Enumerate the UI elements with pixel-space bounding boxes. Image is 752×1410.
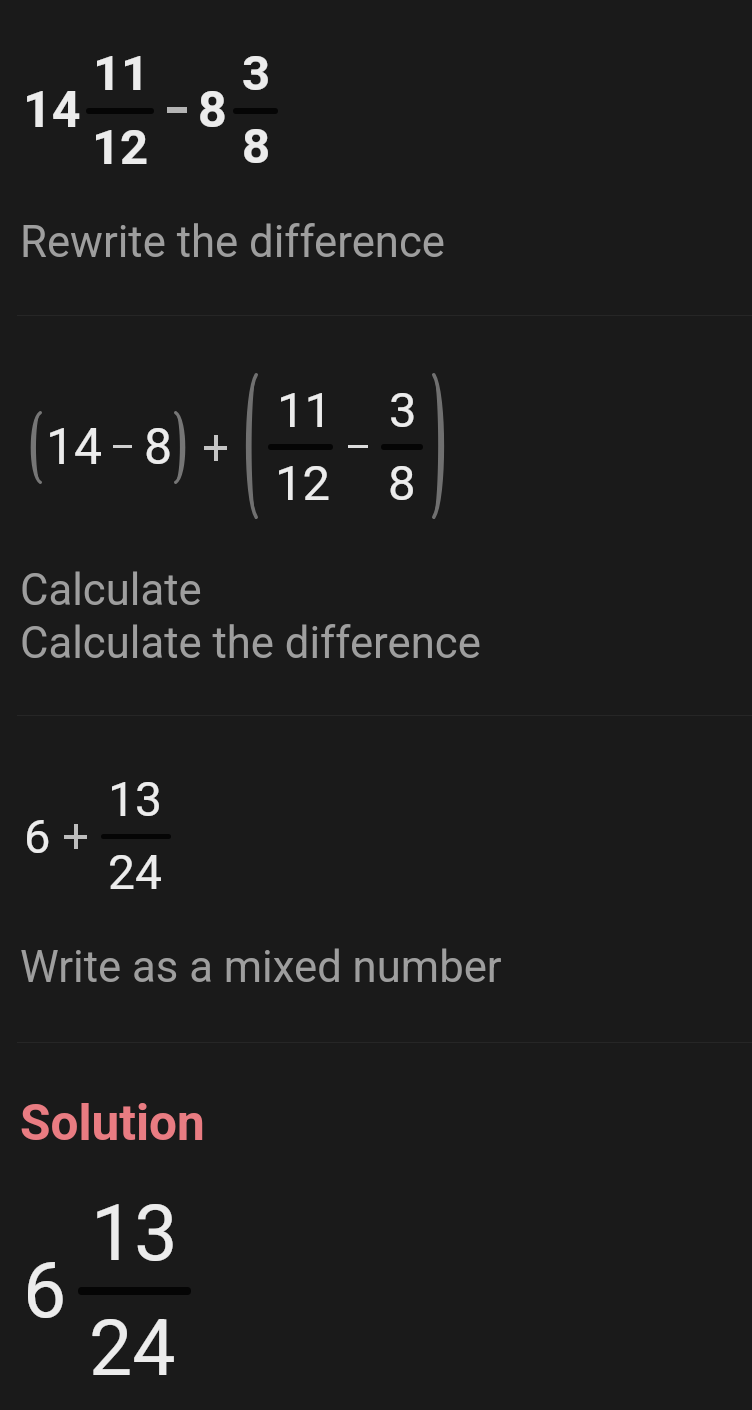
staticText: Solution [20, 1094, 205, 1152]
staticText: 12 [92, 119, 149, 176]
staticText: 14 [46, 418, 103, 477]
staticText: 13 [91, 1189, 178, 1279]
button[interactable]: Step 3: 6 plus 13 over 24 [0, 717, 752, 1042]
staticText: 8 [144, 418, 173, 477]
staticText: 14 [23, 81, 81, 140]
staticText: Calculate the difference [20, 617, 481, 668]
button[interactable]: Solution: 6 and 13 over 24 [0, 1044, 752, 1410]
staticText: 24 [89, 1304, 176, 1394]
staticText: 6 [24, 809, 51, 864]
staticText: 13 [108, 771, 162, 827]
staticText: 8 [242, 118, 271, 175]
staticText: Rewrite the difference [20, 216, 446, 267]
staticText: 11 [277, 382, 333, 439]
staticText: 11 [93, 45, 150, 102]
staticText: 3 [389, 382, 417, 439]
staticText: 3 [242, 45, 271, 102]
staticText: Calculate [20, 564, 202, 615]
staticText: 6 [23, 1246, 67, 1336]
staticText: 8 [198, 81, 227, 140]
staticText: 24 [108, 844, 162, 900]
button[interactable]: Step 1: 14 and 11 over 12 minus 8 and 3 … [0, 0, 752, 315]
staticText: Write as a mixed number [20, 941, 502, 992]
button[interactable]: Step 2: 14 minus 8, plus 11 over 12 minu… [0, 317, 752, 715]
staticText: 12 [275, 455, 331, 512]
staticText: 8 [388, 455, 416, 512]
